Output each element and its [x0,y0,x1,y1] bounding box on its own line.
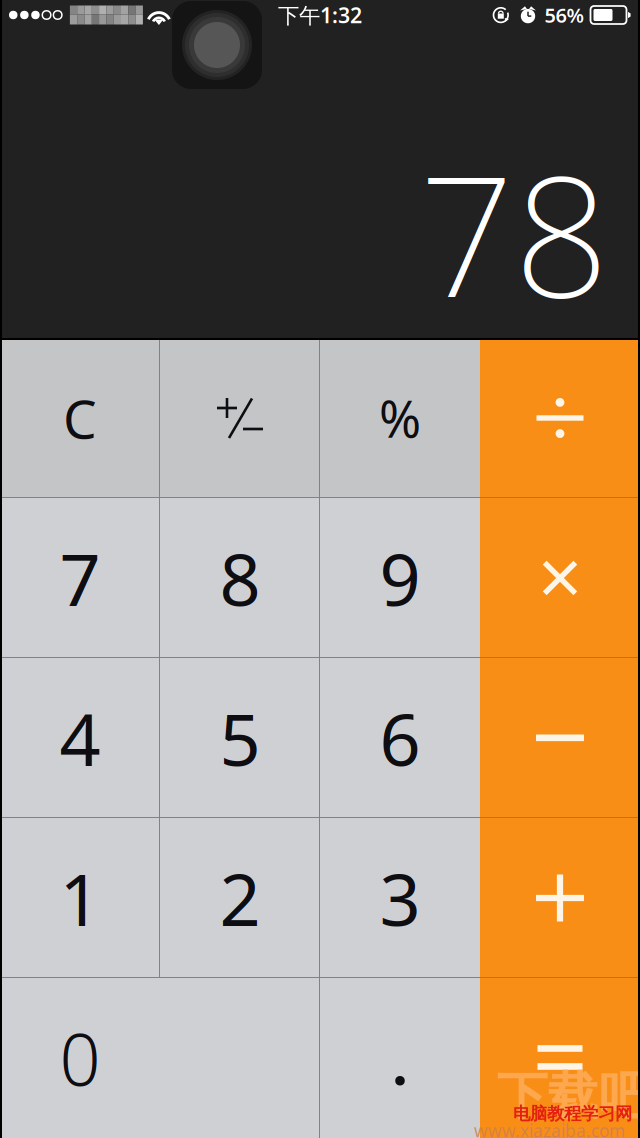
staticText: 4 [59,690,100,786]
staticText: 下午1:32 [278,1,362,29]
button[interactable]: 2 [160,818,320,978]
staticText: 3 [379,850,420,946]
button[interactable]: Decimal point [320,978,480,1138]
button[interactable]: 4 [0,658,160,818]
button[interactable]: Equals [480,978,640,1138]
button[interactable]: % [320,338,480,498]
staticText: 0 [59,1010,100,1106]
button[interactable]: 7 [0,498,160,658]
staticText: C [63,383,97,453]
button[interactable]: 6 [320,658,480,818]
button[interactable]: Add [480,818,640,978]
staticText: 78 [419,122,609,343]
staticText: % [379,384,421,452]
staticText: 9 [379,530,420,626]
staticText: 电脑教程学习网 [513,1103,632,1124]
button[interactable]: 5 [160,658,320,818]
staticText: 2 [219,850,260,946]
staticText: 6 [379,690,420,786]
staticText: 8 [219,530,260,626]
button[interactable]: 1 [0,818,160,978]
button[interactable]: Plus Minus [160,338,320,498]
staticText: 5 [219,690,260,786]
button[interactable]: 3 [320,818,480,978]
staticText: 1 [59,850,100,946]
button[interactable]: C [0,338,160,498]
button[interactable]: Divide [480,338,640,498]
button[interactable]: Multiply [480,498,640,658]
button[interactable]: 8 [160,498,320,658]
button[interactable]: 0 [0,978,320,1138]
button[interactable]: 9 [320,498,480,658]
staticText: 7 [59,530,100,626]
staticText: www.xiazaiba.com [474,1119,625,1138]
button[interactable]: Subtract [480,658,640,818]
staticText: 下载吧 [497,1065,640,1127]
staticText: 56% [544,2,584,28]
